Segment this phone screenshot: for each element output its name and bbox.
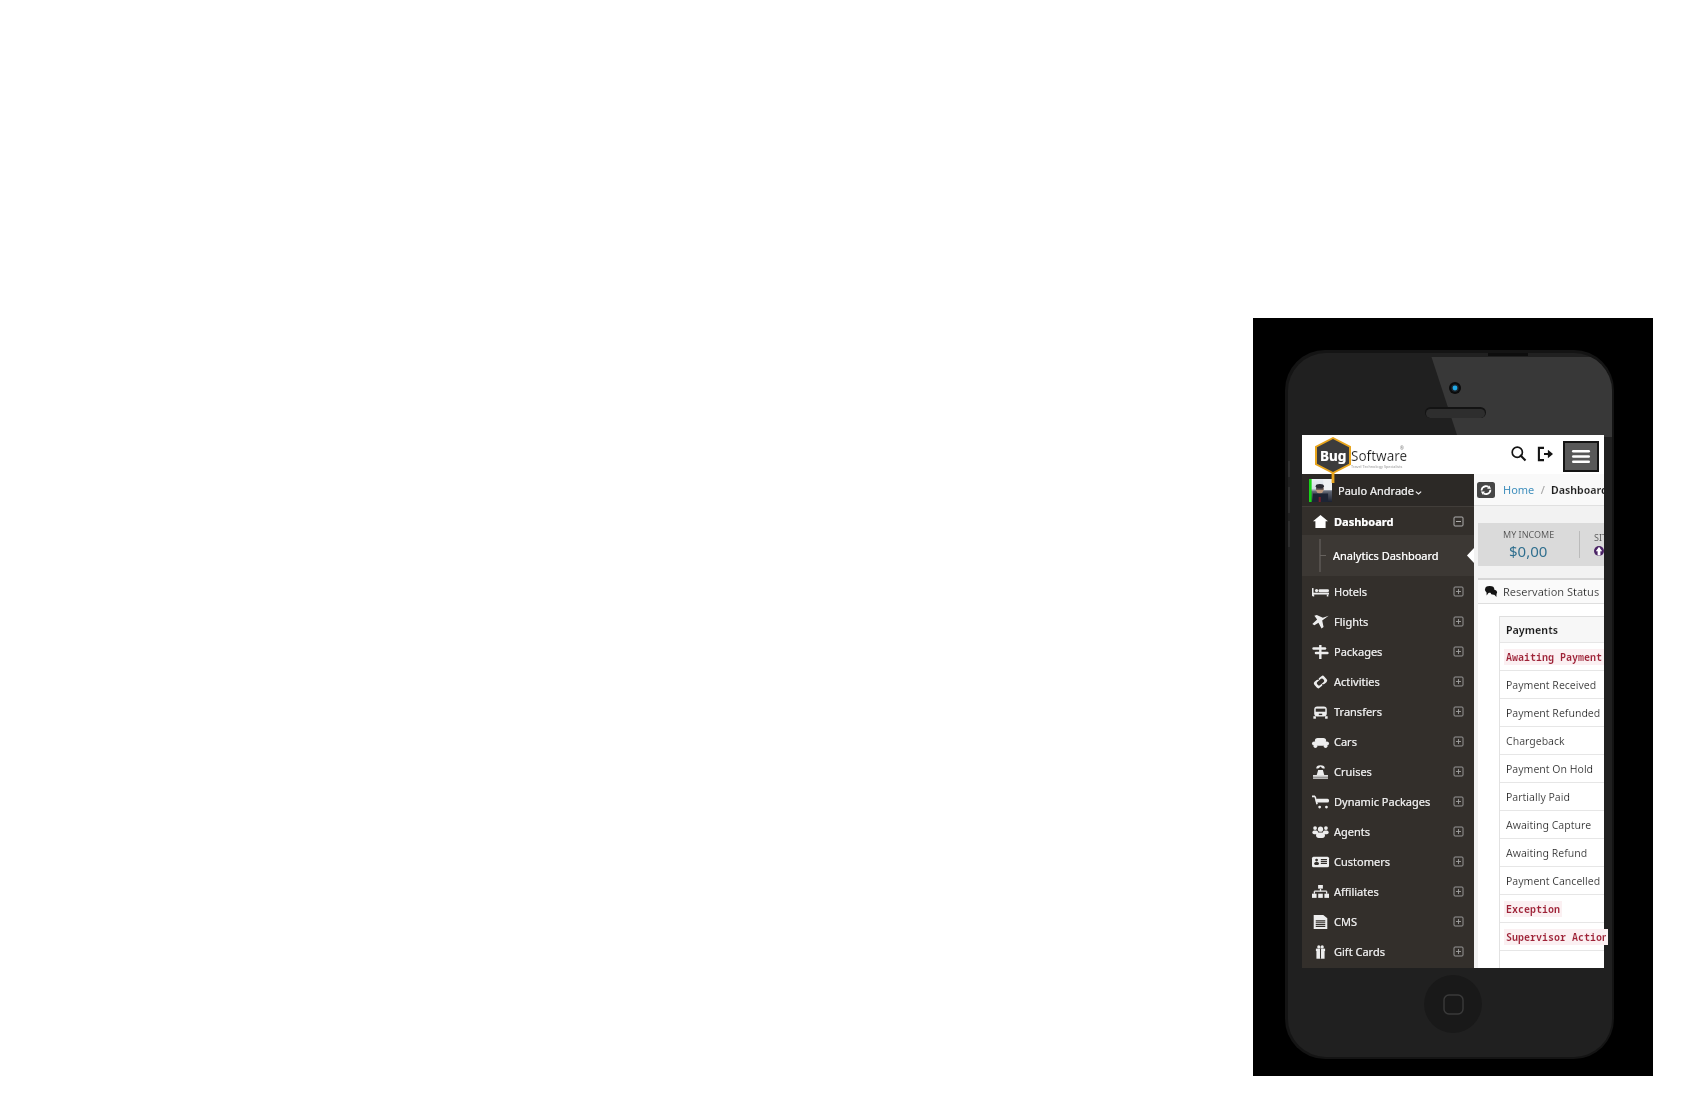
staticText: Awaiting Capture (1506, 818, 1592, 832)
button[interactable]: Partially Paid (1500, 783, 1604, 810)
staticText: / (1535, 482, 1551, 497)
staticText: Payments (1506, 623, 1558, 637)
button[interactable]: Payment Cancelled (1500, 867, 1604, 894)
staticText: $0,00 (1509, 541, 1548, 561)
button[interactable]: Payment On Hold (1500, 755, 1604, 782)
button[interactable]: Search (1508, 443, 1529, 464)
staticText: CMS (1334, 914, 1357, 929)
button[interactable]: Analytics Dashboard (1302, 535, 1474, 576)
button[interactable]: Supervisor Action (1500, 923, 1604, 950)
button[interactable]: Menu (1565, 443, 1597, 470)
staticText: MY INCOME (1503, 528, 1555, 540)
button[interactable]: Cruises (1302, 756, 1474, 786)
staticText: Activities (1334, 674, 1380, 689)
button[interactable]: Activities (1302, 666, 1474, 696)
staticText: Exception (1506, 902, 1560, 916)
button[interactable]: Gift Cards (1302, 936, 1474, 966)
staticText: Supervisor Action (1506, 930, 1606, 944)
staticText: Awaiting Refund (1506, 846, 1588, 860)
button[interactable]: Payments (1500, 617, 1604, 642)
button[interactable]: Packages (1302, 636, 1474, 666)
staticText: Bug (1320, 447, 1347, 465)
staticText: Cars (1334, 734, 1357, 749)
staticText: Agents (1334, 824, 1371, 839)
staticText: Hotels (1334, 584, 1368, 599)
staticText: Paulo Andrade (1338, 483, 1415, 498)
button[interactable]: Awaiting Refund (1500, 839, 1604, 866)
staticText: Software (1351, 447, 1408, 465)
button[interactable]: Customers (1302, 846, 1474, 876)
button[interactable]: Flights (1302, 606, 1474, 636)
button[interactable]: Agents (1302, 816, 1474, 846)
staticText: Partially Paid (1506, 790, 1570, 804)
staticText: ® (1400, 445, 1404, 451)
staticText: Chargeback (1506, 734, 1565, 748)
staticText: Gift Cards (1334, 944, 1385, 959)
staticText: Payment On Hold (1506, 762, 1594, 776)
staticText: Home (1503, 482, 1535, 497)
staticText: Transfers (1334, 704, 1382, 719)
button[interactable]: Dynamic Packages (1302, 786, 1474, 816)
button[interactable]: Awaiting Payment (1500, 643, 1604, 670)
staticText: Payment Cancelled (1506, 874, 1601, 888)
button[interactable]: Dashboard (1302, 507, 1474, 535)
staticText: Affiliates (1334, 884, 1379, 899)
staticText: Analytics Dashboard (1333, 548, 1439, 563)
button[interactable]: CMS (1302, 906, 1474, 936)
button[interactable]: Affiliates (1302, 876, 1474, 906)
button[interactable]: Payment Refunded (1500, 699, 1604, 726)
staticText: Awaiting Payment (1506, 650, 1602, 664)
staticText: Customers (1334, 854, 1390, 869)
staticText: Dashboard (1551, 483, 1604, 497)
button[interactable]: Exception (1500, 895, 1604, 922)
staticText: Travel Technology Specialists (1351, 464, 1403, 469)
button[interactable]: Paulo Andrade (1302, 474, 1474, 506)
button[interactable]: Chargeback (1500, 727, 1604, 754)
button[interactable]: Hotels (1302, 576, 1474, 606)
staticText: Dashboard (1334, 514, 1394, 529)
staticText: Cruises (1334, 764, 1372, 779)
staticText: Packages (1334, 644, 1383, 659)
button[interactable]: Log out (1535, 443, 1556, 464)
button[interactable]: Awaiting Capture (1500, 811, 1604, 838)
button[interactable]: Cars (1302, 726, 1474, 756)
button[interactable]: Refresh (1477, 482, 1495, 498)
staticText: Payment Refunded (1506, 706, 1601, 720)
staticText: Reservation Status (1503, 584, 1600, 599)
staticText: Dynamic Packages (1334, 794, 1431, 809)
staticText: Flights (1334, 614, 1369, 629)
button[interactable]: Transfers (1302, 696, 1474, 726)
staticText: Payment Received (1506, 678, 1597, 692)
button[interactable]: Payment Received (1500, 671, 1604, 698)
staticText: SIT (1594, 531, 1604, 543)
